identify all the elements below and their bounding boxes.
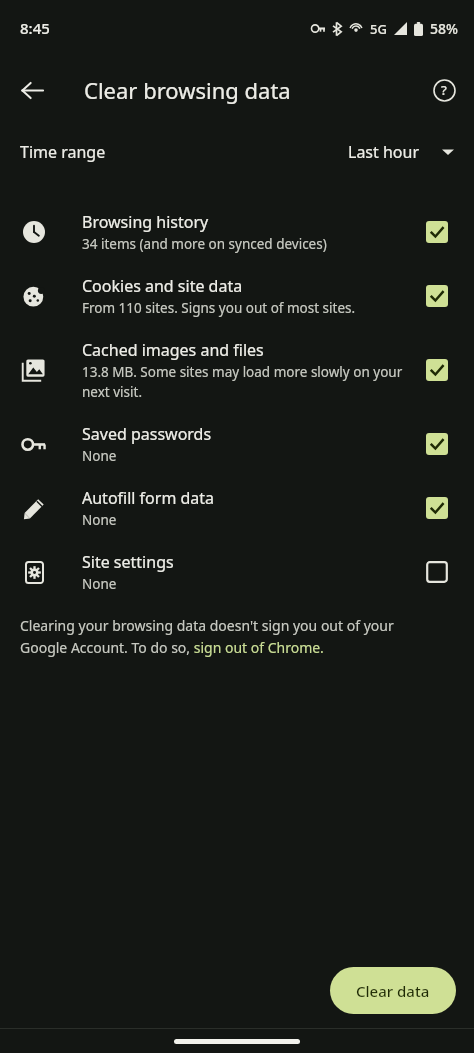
staticText: Time range	[20, 141, 106, 163]
staticText: From 110 sites. Signs you out of most si…	[82, 299, 356, 317]
staticText: None	[82, 511, 117, 529]
staticText: Site settings	[82, 551, 174, 573]
button[interactable]: Cookies and site data	[0, 264, 474, 328]
button[interactable]	[420, 555, 454, 589]
staticText: Cached images and files	[82, 339, 264, 361]
button[interactable]: Autofill form data	[0, 476, 474, 540]
staticText: Saved passwords	[82, 423, 212, 445]
staticText: ?	[441, 81, 447, 99]
button[interactable]: Browsing history	[0, 200, 474, 264]
button[interactable]	[420, 279, 454, 313]
staticText: Cookies and site data	[82, 275, 243, 297]
staticText: 13.8 MB. Some sites may load more slowly…	[82, 363, 406, 401]
staticText: Clear browsing data	[84, 75, 291, 105]
button[interactable]: Saved passwords	[0, 412, 474, 476]
staticText: None	[82, 447, 117, 465]
staticText: Last hour	[348, 141, 420, 163]
staticText: Autofill form data	[82, 487, 215, 509]
button[interactable]: Cached images and files	[0, 328, 474, 412]
button[interactable]	[420, 427, 454, 461]
staticText: 58%	[430, 19, 458, 38]
button[interactable]: Time range	[0, 124, 474, 180]
staticText: Clear data	[356, 981, 430, 1001]
staticText: Clearing your browsing data doesn't sign…	[20, 616, 440, 657]
staticText: None	[82, 575, 117, 593]
button[interactable]: Clear data	[330, 967, 456, 1014]
button[interactable]: Back	[8, 66, 56, 114]
button[interactable]	[420, 215, 454, 249]
button[interactable]: Site settings	[0, 540, 474, 604]
staticText: 34 items (and more on synced devices)	[82, 235, 327, 253]
staticText: Browsing history	[82, 211, 209, 233]
staticText: 5G	[370, 20, 387, 38]
button[interactable]	[420, 491, 454, 525]
button[interactable]: Help	[422, 68, 466, 112]
staticText: 8:45	[20, 18, 50, 38]
button[interactable]	[420, 353, 454, 387]
